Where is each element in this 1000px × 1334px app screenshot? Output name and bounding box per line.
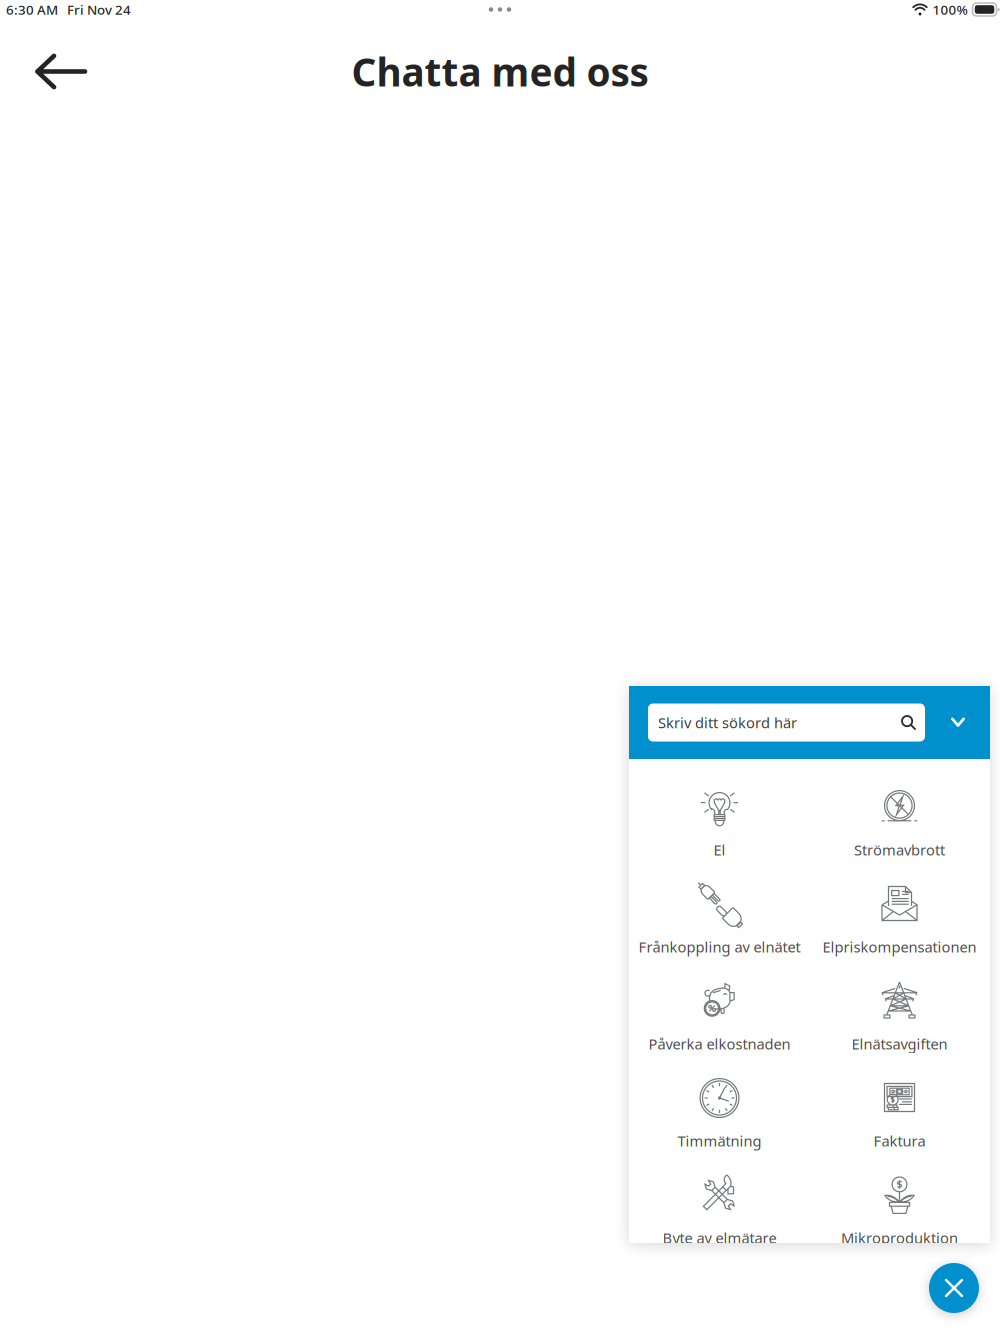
staticText: El [713,840,725,859]
button[interactable]: Strömavbrott [809,786,989,883]
staticText: Timmätning [677,1131,761,1150]
staticText: Byte av elmätare [662,1228,776,1247]
staticText: Chatta med oss [351,46,648,97]
staticText: Elnätsavgiften [851,1034,947,1053]
button[interactable]: Frånkoppling av elnätet [629,883,809,980]
staticText: 6:30 AM [6,1,58,18]
button[interactable]: Collapse chat [936,700,980,744]
button[interactable]: Mikroproduktion [809,1174,989,1271]
button[interactable]: Byte av elmätare [629,1174,809,1271]
button[interactable]: Back [24,42,98,100]
staticText: Strömavbrott [854,840,945,859]
staticText: Faktura [873,1131,925,1150]
button[interactable]: El [629,786,809,883]
button[interactable]: Elnätsavgiften [809,980,989,1077]
staticText: Fri Nov 24 [67,1,131,18]
staticText: Elpriskompensationen [822,937,976,956]
staticText: Påverka elkostnaden [648,1034,790,1053]
staticText: Skriv ditt sökord här [658,713,797,732]
button[interactable]: Close chat [929,1263,979,1313]
staticText: Frånkoppling av elnätet [638,937,800,956]
staticText: 100% [932,1,967,18]
button[interactable]: Faktura [809,1077,989,1174]
button[interactable]: Påverka elkostnaden [629,980,809,1077]
staticText: Mikroproduktion [841,1228,958,1247]
button[interactable]: Timmätning [629,1077,809,1174]
button[interactable]: Elpriskompensationen [809,883,989,980]
button[interactable]: Skriv ditt sökord här [648,703,925,741]
